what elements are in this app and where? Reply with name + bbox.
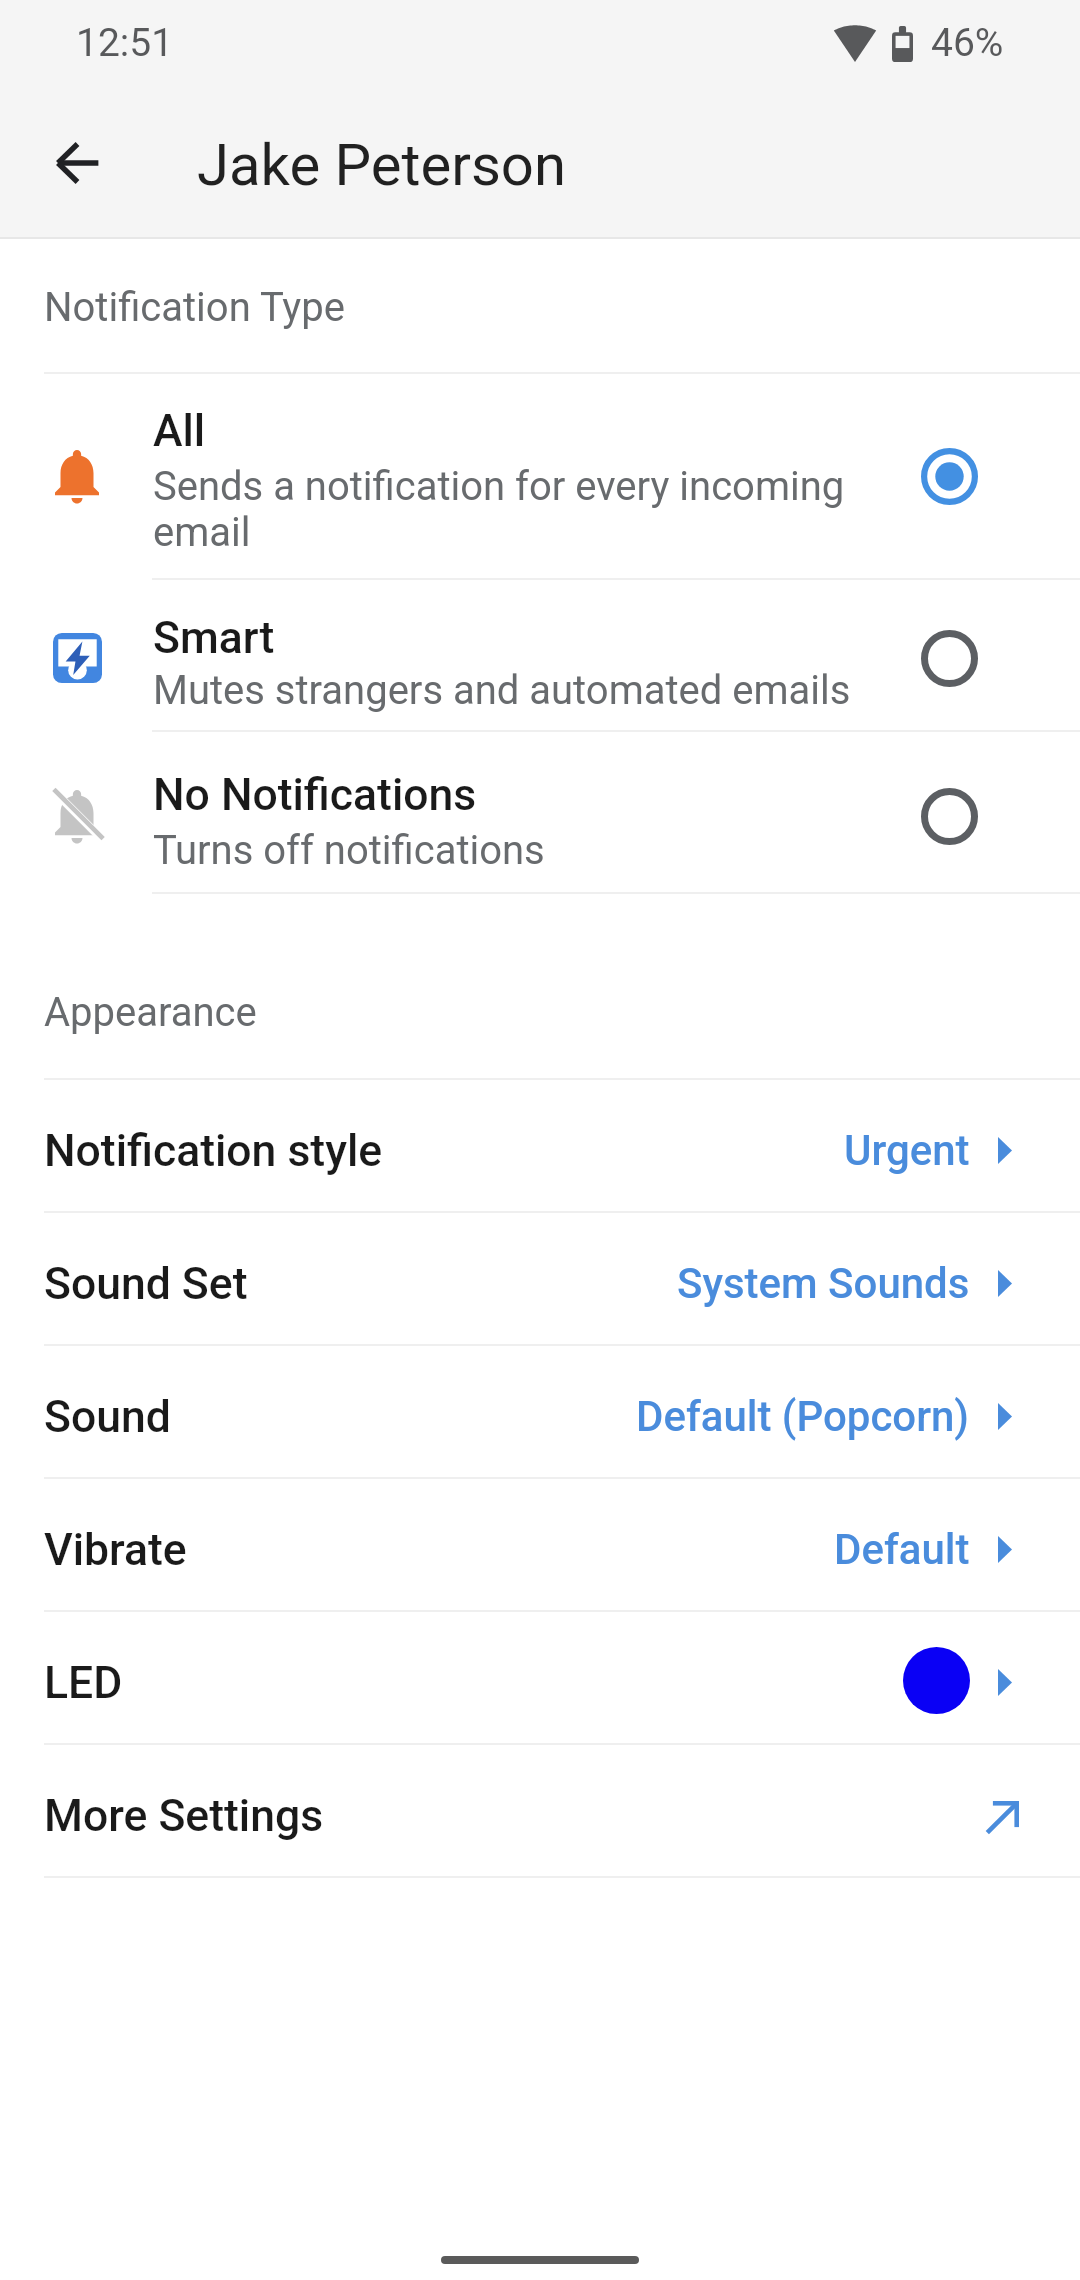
- button[interactable]: Select All: [893, 421, 1003, 531]
- staticText: 12:51: [76, 20, 174, 66]
- button[interactable]: Smart: [0, 580, 1080, 730]
- staticText: Notification style: [44, 1125, 383, 1177]
- staticText: System Sounds: [677, 1259, 970, 1308]
- staticText: Appearance: [44, 989, 257, 1036]
- staticText: Smart: [153, 612, 275, 664]
- button[interactable]: LED: [0, 1612, 1080, 1743]
- staticText: Notification Type: [44, 284, 345, 331]
- button[interactable]: No Notifications: [0, 732, 1080, 892]
- staticText: No Notifications: [153, 769, 477, 821]
- button[interactable]: Sound Set: [0, 1213, 1080, 1344]
- button[interactable]: More Settings: [0, 1745, 1080, 1876]
- staticText: Sends a notification for every incoming …: [153, 463, 865, 556]
- staticText: More Settings: [44, 1790, 324, 1842]
- staticText: 46%: [931, 20, 1004, 66]
- button[interactable]: Select No Notifications: [893, 761, 1003, 871]
- staticText: Sound: [44, 1391, 171, 1443]
- staticText: Vibrate: [44, 1524, 187, 1576]
- button[interactable]: All: [0, 374, 1080, 578]
- staticText: Jake Peterson: [197, 131, 566, 199]
- staticText: Turns off notifications: [153, 827, 545, 874]
- staticText: LED: [44, 1657, 123, 1709]
- button[interactable]: Vibrate: [0, 1479, 1080, 1610]
- button[interactable]: Sound: [0, 1346, 1080, 1477]
- staticText: Default: [834, 1525, 970, 1574]
- button[interactable]: Back: [25, 110, 129, 214]
- staticText: All: [153, 405, 206, 457]
- staticText: Sound Set: [44, 1258, 248, 1310]
- other: Open more settings: [985, 1801, 1019, 1835]
- staticText: Mutes strangers and automated emails: [153, 667, 851, 714]
- staticText: Default (Popcorn): [636, 1392, 970, 1441]
- button[interactable]: Select Smart: [893, 603, 1003, 713]
- staticText: Urgent: [844, 1126, 970, 1175]
- button[interactable]: Notification style: [0, 1080, 1080, 1211]
